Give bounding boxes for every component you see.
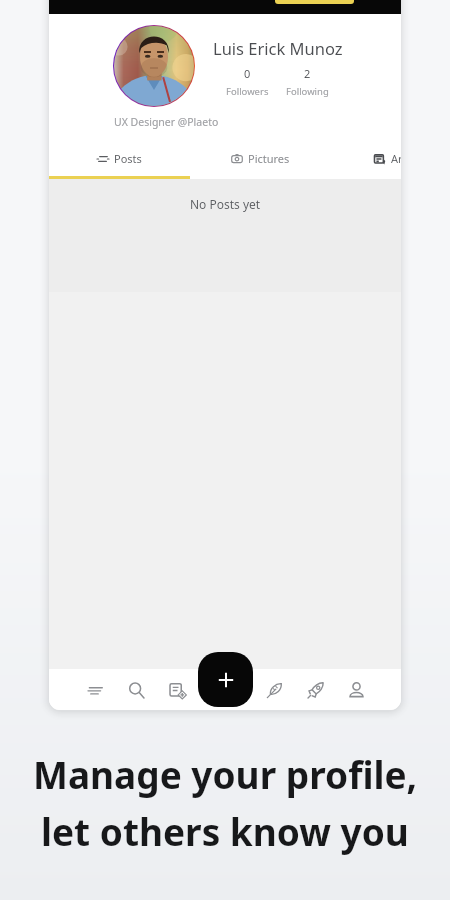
button[interactable]: Profile xyxy=(343,677,369,703)
button[interactable]: Articles xyxy=(331,143,401,174)
button[interactable]: Pictures xyxy=(190,143,331,174)
button[interactable]: Feed xyxy=(82,677,108,703)
staticText: Posts xyxy=(114,151,142,166)
staticText: 0 xyxy=(244,66,251,81)
staticText: No Posts yet xyxy=(190,196,261,212)
button[interactable]: 2 xyxy=(282,66,332,98)
button[interactable]: Write xyxy=(261,677,287,703)
staticText: 2 xyxy=(304,66,311,81)
staticText: Followers xyxy=(226,85,269,98)
staticText: let others know you xyxy=(41,806,409,856)
staticText: Luis Erick Munoz xyxy=(213,37,343,59)
staticText: UX Designer @Plaeto xyxy=(114,115,219,129)
button[interactable]: Create new post xyxy=(198,652,253,707)
button[interactable]: Boost xyxy=(302,677,328,703)
staticText: Pictures xyxy=(248,151,290,166)
button[interactable]: Posts xyxy=(49,143,190,174)
button[interactable]: 0 xyxy=(222,66,272,98)
staticText: Manage your profile, xyxy=(33,749,418,799)
staticText: Articles xyxy=(391,151,401,166)
button[interactable]: New note xyxy=(164,677,190,703)
staticText: Following xyxy=(286,85,329,98)
button[interactable]: Search xyxy=(123,677,149,703)
